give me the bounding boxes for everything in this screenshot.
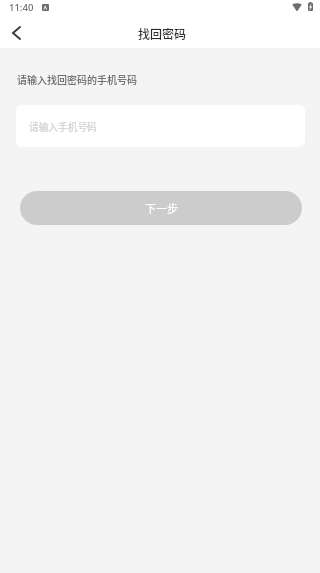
staticText: 找回密码: [138, 25, 187, 42]
staticText: 下一步: [145, 200, 178, 216]
button[interactable]: Back: [0, 20, 32, 48]
button[interactable]: 请输入手机号码: [16, 105, 305, 147]
staticText: 11:40: [9, 1, 34, 14]
button[interactable]: 下一步: [20, 191, 302, 225]
staticText: 请输入手机号码: [29, 120, 97, 134]
staticText: 请输入找回密码的手机号码: [17, 72, 137, 86]
